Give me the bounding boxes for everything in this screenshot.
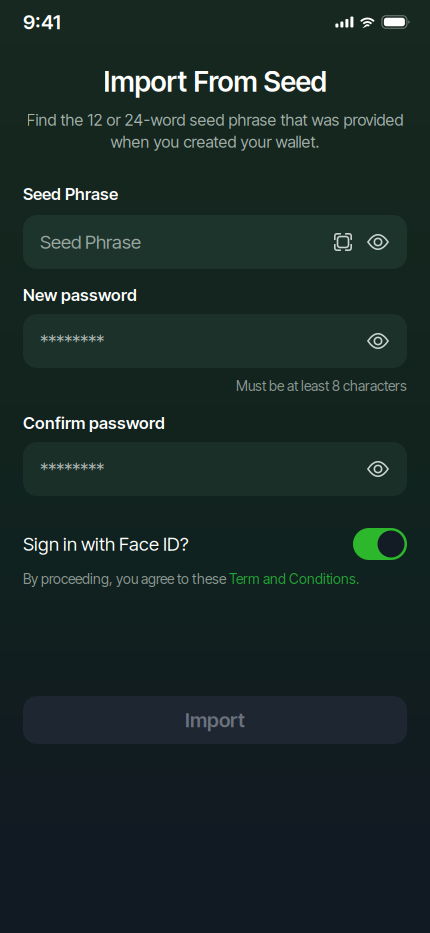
button[interactable]: Import [23, 696, 407, 744]
button[interactable]: Show seed phrase [360, 215, 396, 269]
button[interactable]: Term and Conditions. [229, 570, 359, 587]
staticText: Seed Phrase [23, 184, 118, 204]
button[interactable]: Scan QR code [326, 215, 360, 269]
staticText: when you created your wallet. [110, 132, 319, 152]
staticText: New password [23, 285, 137, 305]
staticText: ******** [40, 458, 104, 480]
staticText: Sign in with Face ID? [23, 533, 189, 555]
staticText: Must be at least 8 characters [236, 377, 407, 394]
staticText: By proceeding, you agree to these [23, 570, 229, 587]
staticText: Term and Conditions. [229, 570, 359, 587]
staticText: Import [185, 708, 245, 732]
staticText: Find the 12 or 24-word seed phrase that … [26, 110, 403, 130]
staticText: ******** [40, 330, 104, 352]
staticText: Import From Seed [103, 65, 326, 98]
staticText: Confirm password [23, 413, 165, 433]
button[interactable]: Show new password [360, 314, 396, 368]
staticText: Seed Phrase [40, 231, 141, 253]
button[interactable]: Sign in with Face ID [353, 528, 407, 560]
staticText: 9:41 [23, 10, 61, 34]
button[interactable]: Show confirm password [360, 442, 396, 496]
